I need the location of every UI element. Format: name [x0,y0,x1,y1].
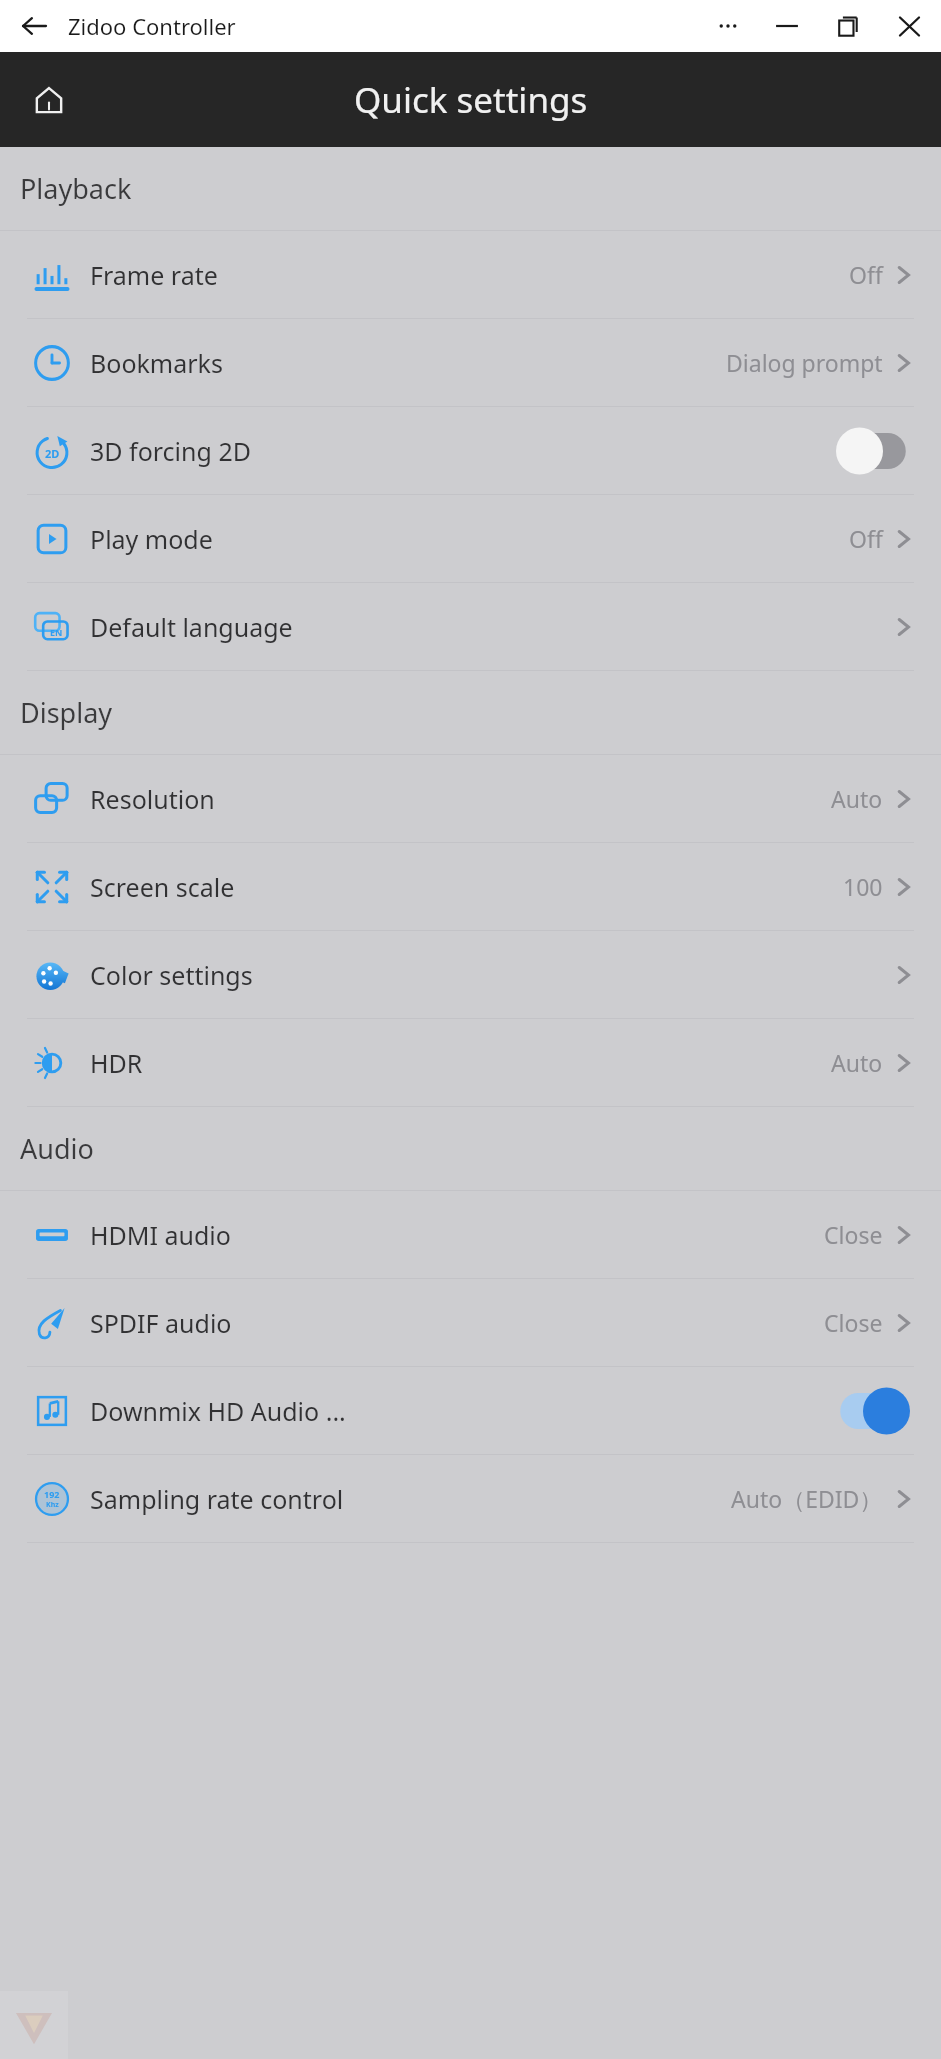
staticText: EN [50,626,63,638]
button[interactable]: Frame rate [0,231,941,318]
button[interactable]: More options [699,0,757,52]
staticText: SPDIF audio [90,1306,824,1340]
button[interactable]: Color settings [0,931,941,1018]
staticText: Auto [831,783,883,814]
button[interactable]: EN [0,583,941,670]
staticText: HDMI audio [90,1218,824,1252]
button[interactable]: Play mode [0,495,941,582]
button[interactable]: On [827,1383,919,1439]
staticText: Screen scale [90,870,843,904]
staticText: Zidoo Controller [68,11,236,41]
staticText: Bookmarks [90,346,726,380]
staticText: Close [824,1307,883,1338]
staticText: 2D [45,446,60,461]
staticText: Dialog prompt [726,347,883,378]
staticText: 3D forcing 2D [90,434,827,468]
staticText: Default language [90,610,889,644]
staticText: Auto（EDID） [731,1483,883,1514]
button[interactable]: HDR [0,1019,941,1106]
staticText: Resolution [90,782,831,816]
staticText: Color settings [90,958,889,992]
staticText: Play mode [90,522,849,556]
staticText: Auto [831,1047,883,1078]
button[interactable]: HDMI audio [0,1191,941,1278]
button[interactable]: Screen scale [0,843,941,930]
staticText: Off [849,259,883,290]
button[interactable]: Resolution [0,755,941,842]
staticText: Downmix HD Audio ... [90,1394,827,1428]
button[interactable]: SPDIF audio [0,1279,941,1366]
staticText: Quick settings [354,76,588,124]
staticText: Close [824,1219,883,1250]
staticText: Khz [46,1500,59,1510]
staticText: HDR [90,1046,831,1080]
staticText: Audio [20,1130,94,1167]
button[interactable]: Close [877,0,941,52]
staticText: Sampling rate control [90,1482,731,1516]
staticText: Display [20,694,113,731]
button[interactable]: Minimize [757,0,817,52]
button[interactable]: Back [0,0,68,52]
staticText: 192 [44,1488,60,1500]
staticText: 100 [843,871,883,902]
button[interactable]: 192 [0,1455,941,1542]
button[interactable]: Restore [817,0,877,52]
button[interactable]: Off [827,423,919,479]
staticText: Frame rate [90,258,849,292]
button[interactable]: Bookmarks [0,319,941,406]
button[interactable]: 2D [0,407,941,494]
button[interactable]: Downmix HD Audio ... [0,1367,941,1454]
staticText: Playback [20,170,132,207]
button[interactable]: Home [20,71,78,129]
staticText: Off [849,523,883,554]
